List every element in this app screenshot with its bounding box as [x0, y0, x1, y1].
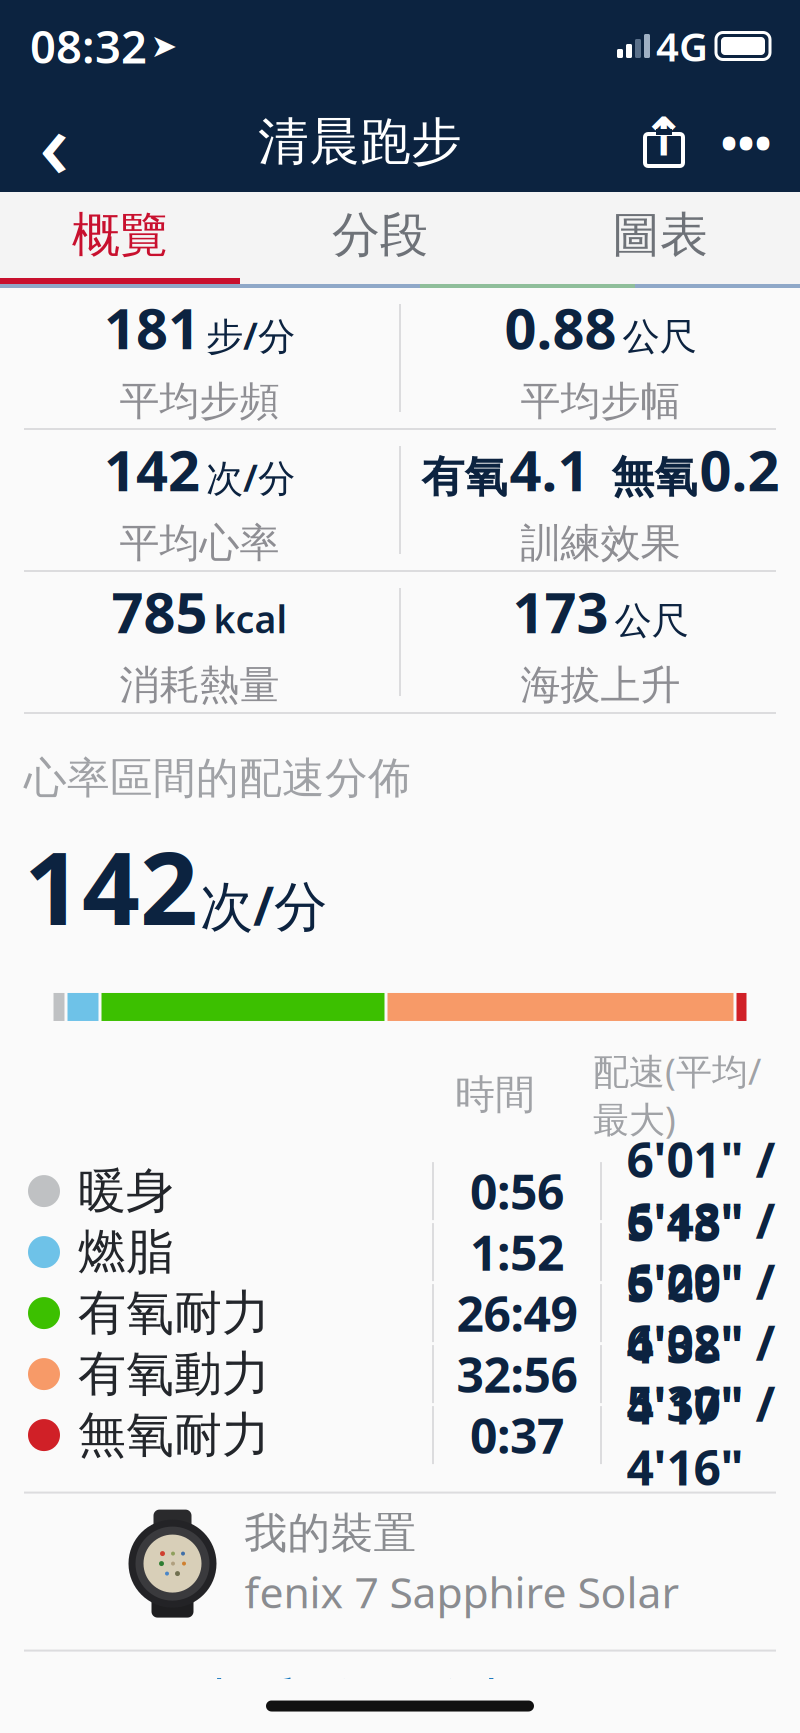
staticText: 0.88 [504, 290, 616, 365]
staticText: 0.2 [699, 432, 779, 507]
staticText: 配速(平均/最大) [593, 1047, 761, 1143]
button[interactable]: 分段 [240, 192, 520, 284]
staticText: 4.1 [509, 432, 589, 507]
staticText: 0:56 [470, 1159, 564, 1223]
button[interactable]: 查看活動影片 [0, 1652, 800, 1733]
staticText: 6'29" / 4'38" [626, 1249, 775, 1377]
staticText: 4G [656, 19, 708, 72]
staticText: 查看活動影片 [193, 1671, 511, 1733]
staticText: 142 [24, 818, 198, 953]
staticText: 我的裝置 [244, 1507, 416, 1559]
staticText: 平均心率 [119, 519, 279, 568]
staticText: 0:37 [470, 1403, 564, 1467]
staticText: 無氧 [611, 451, 697, 503]
staticText: 燃脂 [78, 1223, 174, 1282]
staticText: 時間 [455, 1070, 535, 1119]
staticText: 心率區間的配速分佈 [24, 752, 411, 804]
staticText: 785 [111, 574, 207, 649]
staticText: 次/分 [200, 870, 327, 940]
staticText: 6'48" / 5'00" [626, 1188, 775, 1316]
staticText: ↑ [641, 107, 686, 167]
staticText: 暖身 [78, 1162, 174, 1221]
button[interactable]: More options [704, 100, 788, 184]
button[interactable]: Back [12, 100, 96, 184]
staticText: 分段 [332, 205, 428, 264]
staticText: 6'01" / 5'13" [626, 1127, 775, 1255]
staticText: 有氧動力 [78, 1345, 270, 1404]
staticText: 32:56 [456, 1342, 577, 1406]
staticText: 消耗熱量 [119, 661, 279, 710]
staticText: 6'02" / 4'17" [626, 1310, 775, 1438]
staticText: ••• [720, 112, 771, 172]
staticText: ➤ [150, 28, 177, 64]
staticText: 有氧耐力 [78, 1284, 270, 1343]
staticText: 平均步頻 [119, 377, 279, 426]
staticText: 1:52 [470, 1220, 564, 1284]
staticText: 次/分 [206, 452, 295, 502]
staticText: 公尺 [614, 598, 688, 644]
staticText: 142 [104, 432, 200, 507]
staticText: kcal [213, 594, 287, 643]
staticText: 181 [104, 290, 200, 365]
staticText: 173 [512, 574, 608, 649]
button[interactable]: Share [624, 100, 704, 184]
button[interactable]: 我的裝置 [0, 1494, 800, 1634]
button[interactable]: 概覽 [0, 192, 240, 284]
staticText: 08:32 [30, 16, 147, 76]
staticText: 步/分 [206, 310, 295, 360]
staticText: 5'30" / 4'16" [626, 1371, 775, 1499]
staticText: fenix 7 Sapphire Solar [244, 1563, 679, 1620]
staticText: 清晨跑步 [258, 111, 462, 173]
staticText: 海拔上升 [520, 661, 680, 710]
button[interactable]: 圖表 [520, 192, 800, 284]
staticText: 訓練效果 [520, 519, 680, 568]
staticText: 概覽 [72, 205, 168, 264]
staticText: 無氧耐力 [78, 1406, 270, 1465]
staticText: 26:49 [456, 1281, 577, 1345]
staticText: 圖表 [612, 205, 708, 264]
staticText: 有氧 [421, 451, 507, 503]
staticText: 公尺 [622, 314, 696, 360]
staticText: 平均步幅 [520, 377, 680, 426]
staticText: ‹ [39, 80, 69, 204]
